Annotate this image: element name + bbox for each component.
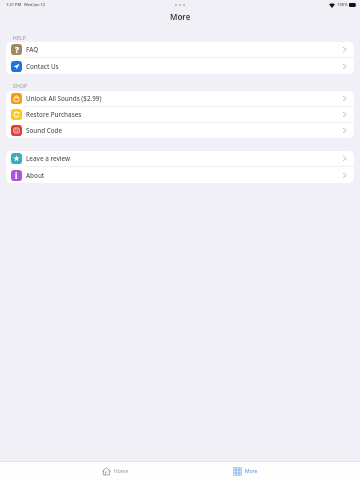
staticText: ?	[15, 44, 19, 55]
button[interactable]: Home	[50, 462, 180, 480]
staticText: HELP	[13, 35, 27, 42]
button[interactable]: i	[6, 167, 354, 183]
staticText: 1:21 PM	[6, 2, 22, 7]
button[interactable]: ?	[6, 42, 354, 57]
staticText: About	[26, 171, 45, 180]
button[interactable]: Restore Purchases	[6, 107, 354, 122]
button[interactable]: More	[180, 462, 310, 480]
staticText: Restore Purchases	[26, 110, 82, 119]
button[interactable]: Leave a review	[6, 151, 354, 166]
staticText: i	[15, 170, 18, 181]
staticText: Unlock All Sounds ($2.99)	[26, 94, 102, 103]
button[interactable]: Contact Us	[6, 58, 354, 74]
button[interactable]: Sound Code	[6, 123, 354, 138]
button[interactable]: Multitasking controls	[175, 4, 185, 6]
staticText: Sound Code	[26, 126, 63, 135]
button[interactable]: Unlock All Sounds ($2.99)	[6, 91, 354, 106]
staticText: FAQ	[26, 45, 39, 54]
staticText: Wed Jan 12	[24, 2, 46, 7]
staticText: Contact Us	[26, 62, 59, 71]
staticText: More	[245, 468, 258, 475]
staticText: More	[170, 11, 191, 22]
staticText: 100%	[337, 2, 348, 8]
staticText: SHOP	[13, 83, 28, 90]
staticText: Leave a review	[26, 154, 71, 163]
staticText: Home	[114, 468, 129, 475]
